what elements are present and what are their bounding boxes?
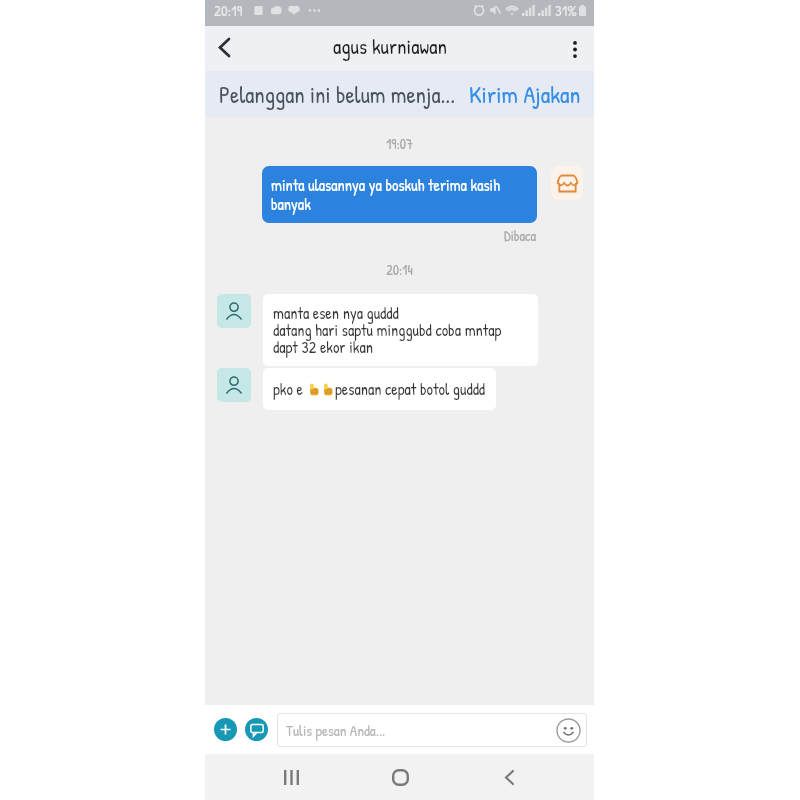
button[interactable]: minta ulasannya ya boskuh terima kasih b… (262, 166, 537, 223)
button[interactable]: More options (557, 31, 593, 67)
staticText: Pelanggan ini belum menja... (219, 79, 456, 110)
button[interactable]: Tulis pesan Anda... (277, 713, 587, 747)
button[interactable]: Add (214, 718, 237, 741)
staticText: 19:07 (205, 134, 594, 153)
button[interactable]: Back (206, 29, 242, 65)
staticText: 31% (555, 0, 577, 20)
button[interactable]: Quick replies (245, 718, 268, 741)
staticText: Kirim Ajakan (469, 78, 581, 110)
button[interactable]: pko e (263, 368, 496, 410)
staticText: 20:14 (205, 260, 594, 279)
staticText: Dibaca (504, 226, 536, 245)
button[interactable]: Shop (551, 166, 583, 200)
staticText: agus kurniawan (333, 32, 447, 60)
staticText: manta esen nya guddd datang hari saptu m… (273, 302, 502, 358)
button[interactable]: Recents (264, 754, 318, 800)
button[interactable]: Kirim Ajakan (469, 78, 581, 110)
button[interactable]: Home (373, 754, 427, 800)
button[interactable]: Emoji (555, 717, 581, 743)
button[interactable]: manta esen nya guddd datang hari saptu m… (263, 294, 538, 366)
staticText: minta ulasannya ya boskuh terima kasih b… (271, 174, 528, 215)
staticText: 20:19 (214, 0, 243, 20)
staticText: pesanan cepat botol guddd (335, 378, 486, 400)
staticText: Tulis pesan Anda... (286, 720, 386, 740)
staticText: pko e (273, 378, 307, 400)
button[interactable]: Back (482, 754, 536, 800)
